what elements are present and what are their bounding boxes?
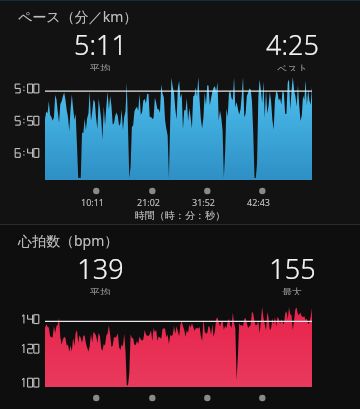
staticText: 155	[269, 250, 316, 287]
staticText: 10:11	[81, 196, 105, 208]
staticText: 平均	[90, 62, 110, 71]
staticText: 5:11	[74, 26, 127, 63]
staticText: 平均	[90, 286, 110, 295]
staticText: 時間（時：分：秒）	[135, 209, 225, 222]
staticText: 139	[77, 250, 124, 287]
staticText: 心拍数（bpm）	[18, 231, 119, 250]
button[interactable]: 心拍数（bpm）	[0, 225, 360, 409]
staticText: 最大	[282, 286, 302, 295]
staticText: 21:02	[137, 196, 161, 208]
staticText: ベスト	[277, 62, 308, 71]
staticText: 31:52	[192, 196, 216, 208]
staticText: 42:43	[247, 196, 271, 208]
button[interactable]: ペース（分／km）	[0, 1, 360, 224]
staticText: 4:25	[266, 26, 319, 63]
staticText: ペース（分／km）	[18, 7, 138, 26]
